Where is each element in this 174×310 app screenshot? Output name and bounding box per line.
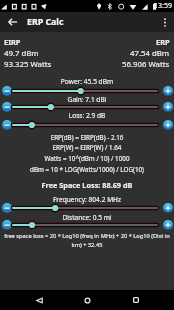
button[interactable]: Increase Frequency (163, 203, 173, 213)
staticText: Frequency: 804.2 MHz (0, 195, 174, 204)
staticText: Gain: 7.1 dBi (0, 95, 174, 104)
staticText: ERP(W) = EIRP(W) / 1.64 (0, 143, 174, 152)
button[interactable]: Loss (13, 120, 157, 130)
staticText: EIRP (4, 37, 21, 47)
button[interactable]: Decrease Frequency (2, 203, 12, 213)
staticText: 93.325 Watts (4, 59, 52, 70)
button[interactable]: Decrease Loss (2, 120, 12, 130)
staticText: Distance: 0.5 mi (0, 213, 174, 222)
button[interactable]: More options (156, 12, 174, 32)
staticText: 56.906 Watts (122, 59, 170, 70)
button[interactable]: Back (19, 290, 59, 310)
staticText: free space loss = 20 * Log10 (freq in MH… (1, 232, 173, 249)
button[interactable]: Increase Gain (163, 102, 173, 112)
button[interactable]: Decrease Gain (2, 102, 12, 112)
button[interactable]: Decrease Power (2, 86, 12, 96)
button[interactable]: Increase Distance (163, 220, 173, 230)
button[interactable]: Power (13, 86, 157, 96)
staticText: ERP Calc (27, 16, 64, 28)
staticText: Watts = 10^(dBm / 10) / 1000 (0, 154, 174, 163)
staticText: dBm = 10 * LOG(Watts/1000) / LOG(10) (0, 165, 174, 174)
button[interactable]: Increase Power (163, 86, 173, 96)
button[interactable]: Gain (13, 102, 157, 112)
button[interactable]: Increase Loss (163, 120, 173, 130)
staticText: Free Space Loss: 88.69 dB (0, 180, 174, 190)
staticText: 47.54 dBm (130, 48, 170, 59)
staticText: 49.7 dBm (4, 48, 39, 59)
button[interactable]: Recent apps (116, 290, 156, 310)
button[interactable]: Navigate up (0, 12, 24, 32)
staticText: Loss: 2.9 dB (0, 111, 174, 120)
staticText: 13:59 (154, 1, 172, 11)
button[interactable]: Frequency (13, 203, 157, 213)
staticText: ERP(dB) = EIRP(dB) - 2.16 (0, 133, 174, 142)
staticText: Power: 45.5 dBm (0, 77, 174, 86)
button[interactable]: Decrease Distance (2, 220, 12, 230)
button[interactable]: Home (67, 290, 107, 310)
button[interactable]: Distance (13, 220, 157, 230)
staticText: ERP (156, 37, 170, 47)
